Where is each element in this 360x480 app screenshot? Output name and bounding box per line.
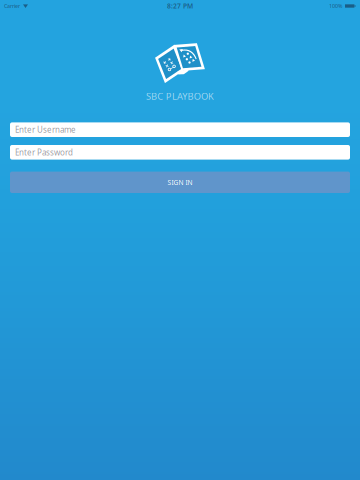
staticText: Carrier: [4, 2, 20, 10]
button[interactable]: Enter Username: [10, 122, 350, 137]
button[interactable]: Enter Password: [10, 145, 350, 160]
staticText: 8:27 PM: [167, 2, 193, 10]
button[interactable]: SIGN IN: [10, 172, 350, 193]
staticText: SIGN IN: [167, 178, 192, 187]
staticText: Enter Password: [15, 147, 73, 158]
staticText: 100%: [329, 2, 342, 10]
staticText: Enter Username: [15, 124, 76, 135]
staticText: SBC PLAYBOOK: [146, 90, 214, 102]
